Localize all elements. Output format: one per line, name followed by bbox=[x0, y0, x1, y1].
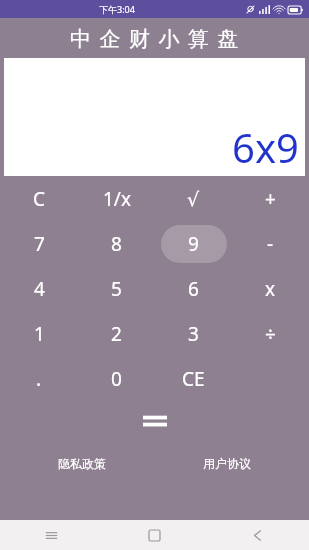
staticText: 用户协议 bbox=[203, 456, 251, 471]
button[interactable]: √ bbox=[155, 176, 232, 221]
staticText: 1/x bbox=[103, 186, 131, 212]
button[interactable]: CE bbox=[155, 356, 232, 401]
button[interactable]: 6 bbox=[155, 266, 232, 311]
staticText: 7 bbox=[34, 231, 45, 257]
button[interactable]: - bbox=[232, 221, 309, 266]
staticText: 9 bbox=[188, 231, 199, 257]
staticText: 3 bbox=[188, 321, 199, 347]
staticText: 隐私政策 bbox=[58, 456, 106, 471]
staticText: + bbox=[265, 186, 276, 212]
staticText: ÷ bbox=[265, 321, 276, 347]
staticText: 下午3:04 bbox=[99, 3, 135, 15]
staticText: x bbox=[265, 276, 276, 302]
staticText: 8 bbox=[111, 231, 122, 257]
staticText: CE bbox=[182, 366, 205, 392]
button[interactable]: Home bbox=[103, 520, 206, 550]
button[interactable]: 用户协议 bbox=[154, 441, 299, 485]
staticText: 6x9 bbox=[232, 120, 299, 174]
staticText: - bbox=[267, 231, 274, 257]
staticText: C bbox=[33, 186, 46, 212]
button[interactable]: x bbox=[232, 266, 309, 311]
button[interactable]: + bbox=[232, 176, 309, 221]
button[interactable]: Back bbox=[206, 520, 309, 550]
button[interactable]: . bbox=[0, 356, 78, 401]
button[interactable]: 1 bbox=[0, 311, 78, 356]
button[interactable]: 5 bbox=[78, 266, 155, 311]
staticText: 0 bbox=[111, 366, 122, 392]
staticText: . bbox=[36, 366, 42, 392]
button[interactable]: ÷ bbox=[232, 311, 309, 356]
button[interactable]: Recent apps bbox=[0, 520, 103, 550]
button[interactable]: 隐私政策 bbox=[10, 441, 154, 485]
button[interactable]: Equals bbox=[129, 404, 181, 438]
button[interactable]: 9 bbox=[155, 221, 232, 266]
staticText: 6 bbox=[188, 276, 199, 302]
button[interactable]: 0 bbox=[78, 356, 155, 401]
staticText: √ bbox=[187, 188, 200, 210]
button[interactable]: 7 bbox=[0, 221, 78, 266]
button[interactable]: 1/x bbox=[78, 176, 155, 221]
button[interactable]: 2 bbox=[78, 311, 155, 356]
staticText: 中 企 财 小 算 盘 bbox=[70, 24, 240, 53]
staticText: 5 bbox=[111, 276, 122, 302]
staticText: 4 bbox=[34, 276, 45, 302]
staticText: 1 bbox=[34, 321, 45, 347]
button[interactable]: 3 bbox=[155, 311, 232, 356]
button[interactable]: 8 bbox=[78, 221, 155, 266]
button[interactable]: C bbox=[0, 176, 78, 221]
button[interactable]: 4 bbox=[0, 266, 78, 311]
staticText: 2 bbox=[111, 321, 122, 347]
